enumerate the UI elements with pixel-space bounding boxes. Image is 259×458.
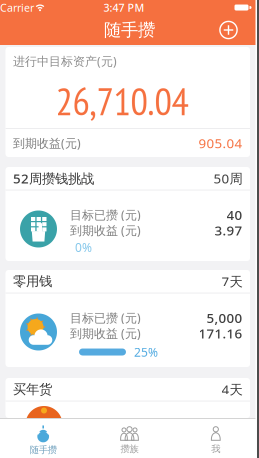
staticText: 目标已攒 (元): [70, 310, 141, 326]
staticText: 52周攒钱挑战: [13, 169, 94, 187]
staticText: 3:47 PM: [103, 0, 144, 15]
button[interactable]: 零用钱: [5, 270, 250, 367]
staticText: 40: [226, 206, 242, 224]
staticText: 5,000: [206, 309, 242, 327]
staticText: 50周: [213, 169, 242, 187]
staticText: 到期收益 (元): [70, 222, 141, 238]
staticText: 0%: [75, 239, 92, 255]
button[interactable]: 攒族: [86, 424, 173, 453]
staticText: 905.04: [198, 134, 242, 152]
staticText: 26,710.04: [55, 76, 188, 126]
staticText: 进行中目标资产(元): [13, 53, 117, 69]
button[interactable]: 我: [173, 424, 259, 453]
button[interactable]: 52周攒钱挑战: [5, 167, 250, 261]
staticText: 3.97: [214, 221, 242, 239]
staticText: 171.16: [198, 324, 242, 342]
staticText: 零用钱: [13, 273, 52, 289]
staticText: 我: [211, 443, 220, 455]
staticText: 7天: [221, 272, 242, 290]
staticText: 到期收益(元): [13, 135, 81, 151]
button[interactable]: 随手攒: [0, 423, 86, 454]
staticText: 随手攒: [104, 19, 155, 41]
staticText: 买年货: [13, 381, 52, 397]
staticText: 4天: [221, 380, 242, 398]
staticText: 随手攒: [30, 444, 57, 456]
button[interactable]: 买年货: [5, 378, 250, 418]
button[interactable]: Add goal: [219, 20, 238, 39]
staticText: 目标已攒 (元): [70, 207, 141, 223]
staticText: 25%: [134, 344, 158, 360]
staticText: 攒族: [120, 443, 138, 455]
staticText: 到期收益 (元): [70, 325, 141, 341]
staticText: Carrier: [0, 0, 34, 15]
